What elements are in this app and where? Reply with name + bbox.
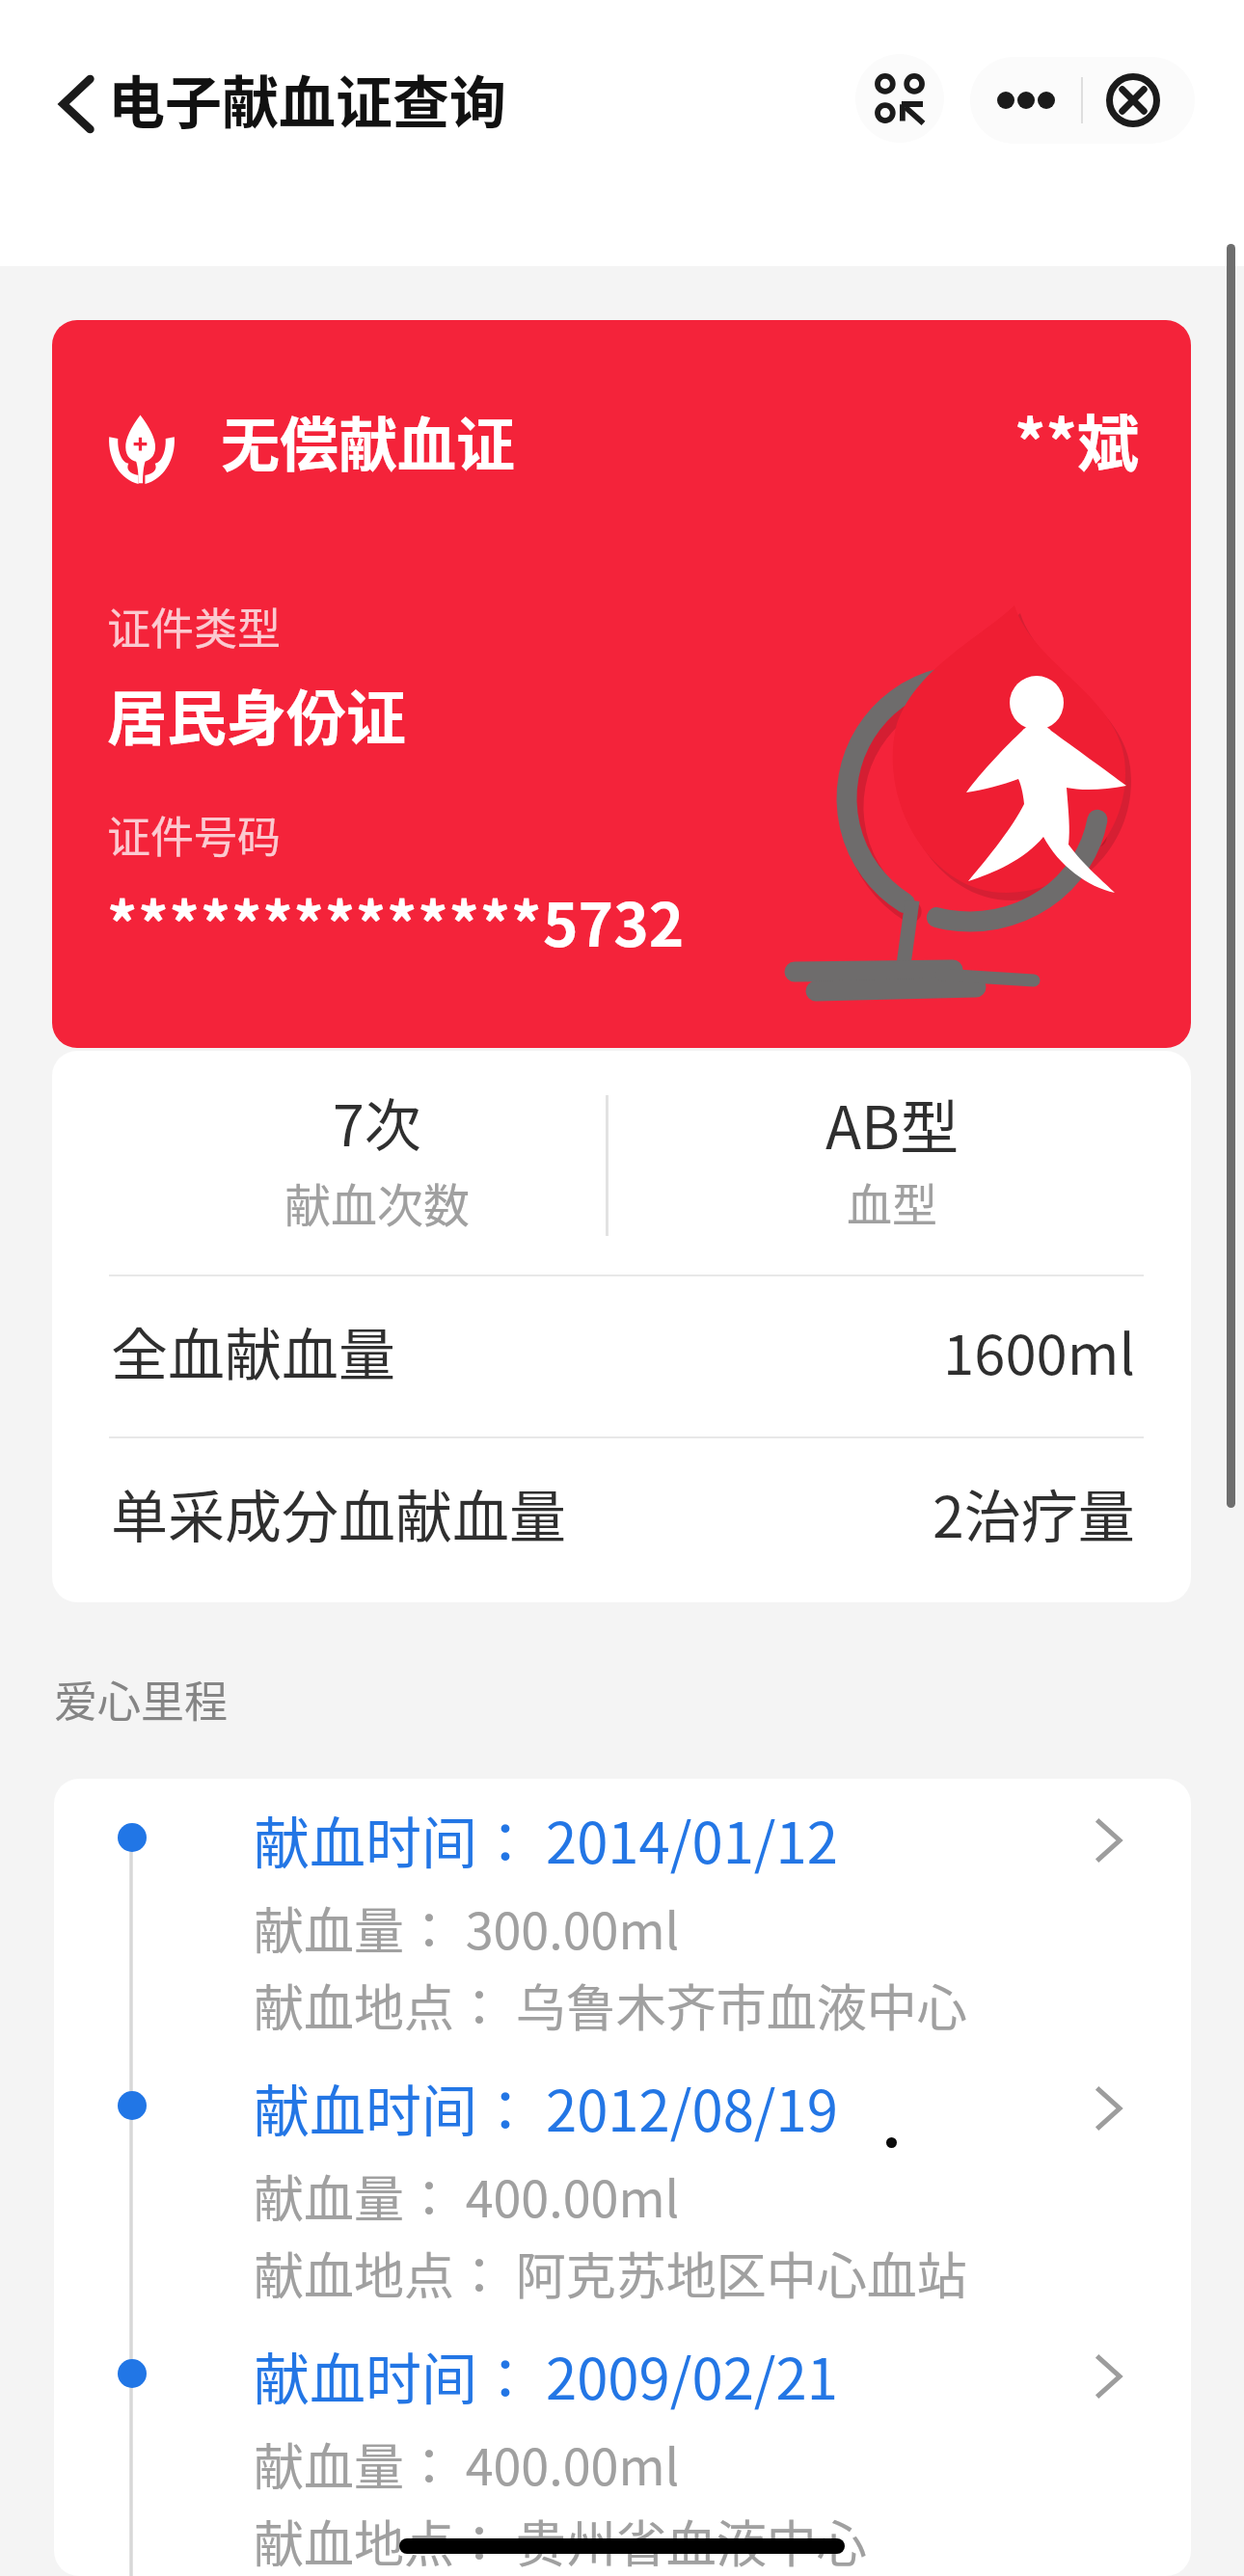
staticText: 电子献血证查询 [108, 58, 507, 140]
button[interactable]: 献血时间： 2012/08/19 [54, 2047, 1191, 2315]
button[interactable]: Close [1077, 57, 1189, 144]
staticText: **斌 [1014, 394, 1139, 484]
staticText: 爱心里程 [54, 1668, 229, 1731]
staticText: 血型 [847, 1168, 937, 1234]
staticText: 献血地点： 阿克苏地区中心血站 [254, 2237, 967, 2309]
staticText: ************** [107, 877, 543, 964]
staticText: 献血次数 [284, 1168, 471, 1236]
staticText: 2治疗量 [933, 1472, 1135, 1554]
button[interactable]: Back [41, 56, 114, 152]
staticText: 单采成分血献血量 [111, 1472, 567, 1554]
staticText: 献血量： 300.00ml [254, 1892, 680, 1964]
staticText: 全血献血量 [111, 1310, 396, 1392]
staticText: 7次 [333, 1081, 421, 1163]
staticText: 1600ml [943, 1310, 1135, 1391]
staticText: 居民身份证 [107, 671, 407, 758]
button[interactable]: More options [970, 57, 1081, 144]
button[interactable]: 献血时间： 2009/02/21 [54, 2315, 1191, 2576]
staticText: 献血量： 400.00ml [254, 2428, 680, 2500]
staticText: 献血时间： 2014/01/12 [254, 1799, 838, 1880]
staticText: 献血时间： 2009/02/21 [254, 2335, 838, 2416]
button[interactable]: 献血时间： 2014/01/12 [54, 1779, 1191, 2047]
staticText: AB型 [825, 1081, 960, 1166]
button[interactable]: Mini program menu [855, 54, 944, 143]
staticText: 献血地点： 贵州省血液中心 [254, 2505, 867, 2576]
staticText: 证件类型 [107, 595, 282, 657]
staticText: 5732 [543, 877, 685, 964]
staticText: 无偿献血证 [221, 398, 516, 483]
staticText: 献血地点： 乌鲁木齐市血液中心 [254, 1969, 967, 2041]
staticText: 证件号码 [107, 803, 282, 866]
staticText: 献血时间： 2012/08/19 [254, 2067, 838, 2148]
staticText: 献血量： 400.00ml [254, 2160, 680, 2232]
